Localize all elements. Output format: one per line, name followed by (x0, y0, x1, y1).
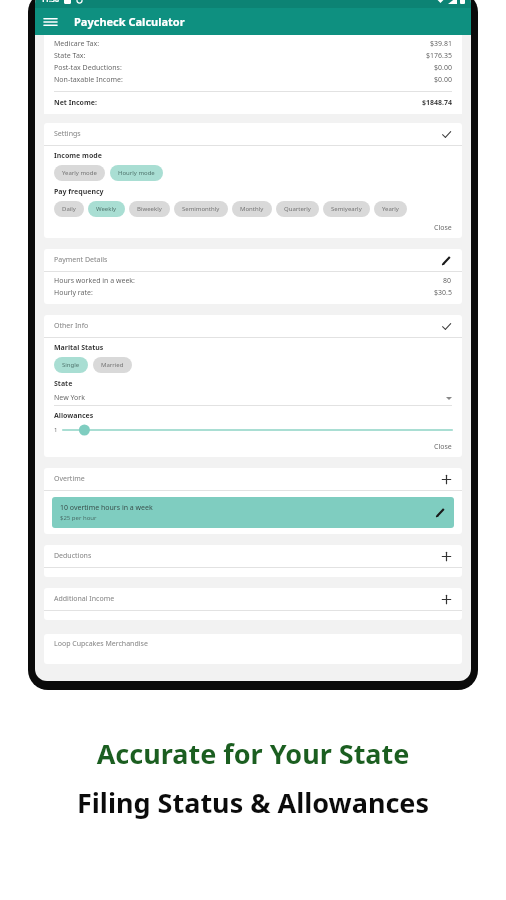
button[interactable]: Yearly mode (54, 165, 105, 181)
staticText: New York (54, 393, 446, 403)
button[interactable]: Overtime (44, 468, 462, 490)
staticText: Married (101, 361, 124, 369)
staticText: Allowances (54, 411, 94, 421)
button[interactable]: Deductions (44, 545, 462, 567)
staticText: 1 (54, 426, 58, 434)
staticText: $39.81 (430, 39, 452, 49)
staticText: Biweekly (137, 205, 162, 213)
staticText: Post-tax Deductions: (54, 63, 434, 73)
button[interactable]: Payment Details (44, 249, 462, 271)
button[interactable]: Additional Income (44, 588, 462, 610)
staticText: Pay frequency (54, 187, 104, 197)
staticText: Non-taxable Income: (54, 75, 434, 85)
staticText: Hours worked in a week: (54, 276, 443, 286)
other: Add (441, 474, 452, 485)
button[interactable]: Semiyearly (323, 201, 370, 217)
staticText: Hourly mode (118, 169, 155, 177)
button[interactable]: Other Info (44, 315, 462, 337)
staticText: Quarterly (284, 205, 311, 213)
button[interactable]: New York (54, 393, 452, 403)
staticText: Close (434, 223, 452, 233)
staticText: $1848.74 (422, 98, 452, 108)
staticText: Paycheck Calculator (74, 14, 185, 29)
button[interactable]: Quarterly (276, 201, 319, 217)
staticText: Deductions (54, 551, 441, 561)
staticText: $0.00 (434, 63, 452, 73)
staticText: Net Income: (54, 98, 422, 108)
staticText: Other Info (54, 321, 441, 331)
staticText: $25 per hour (60, 514, 97, 522)
staticText: Hourly rate: (54, 288, 434, 298)
staticText: Semiyearly (331, 205, 362, 213)
staticText: Close (434, 442, 452, 452)
staticText: 10 overtime hours in a week (60, 503, 153, 513)
staticText: Filing Status & Allowances (0, 784, 506, 821)
other: Edit (435, 507, 446, 518)
staticText: $30.5 (434, 288, 452, 298)
staticText: Semimonthly (182, 205, 220, 213)
other: Confirm (441, 321, 452, 332)
staticText: Accurate for Your State (0, 735, 506, 772)
other: Add (441, 594, 452, 605)
staticText: Yearly mode (62, 169, 97, 177)
staticText: Medicare Tax: (54, 39, 430, 49)
staticText: Yearly (382, 205, 399, 213)
staticText: Loop Cupcakes Merchandise (54, 639, 148, 649)
staticText: Daily (62, 205, 76, 213)
staticText: State Tax: (54, 51, 426, 61)
staticText: Payment Details (54, 255, 441, 265)
button[interactable]: Loop Cupcakes Merchandise (44, 634, 462, 654)
other: Select state (446, 396, 452, 400)
button[interactable]: Hourly mode (110, 165, 163, 181)
staticText: Overtime (54, 474, 441, 484)
staticText: Weekly (96, 205, 117, 213)
staticText: $176.35 (426, 51, 452, 61)
staticText: Single (62, 361, 80, 369)
staticText: Settings (54, 129, 441, 139)
button[interactable]: Yearly (374, 201, 407, 217)
other: Add (441, 551, 452, 562)
staticText: Marital Status (54, 343, 104, 353)
button[interactable]: Monthly (232, 201, 272, 217)
staticText: Monthly (240, 205, 264, 213)
staticText: Income mode (54, 151, 102, 161)
button[interactable]: Semimonthly (174, 201, 228, 217)
button[interactable]: Close (54, 442, 452, 452)
button[interactable]: Close (54, 223, 452, 233)
staticText: State (54, 379, 73, 389)
other: Edit (441, 255, 452, 266)
staticText: 11:58 (41, 0, 59, 5)
button[interactable]: Settings (44, 123, 462, 145)
other: Confirm (441, 129, 452, 140)
button[interactable]: Menu (35, 11, 66, 33)
button[interactable]: Single (54, 357, 88, 373)
button[interactable]: Daily (54, 201, 84, 217)
staticText: Additional Income (54, 594, 441, 604)
staticText: $0.00 (434, 75, 452, 85)
staticText: 80 (443, 276, 452, 286)
button[interactable] (63, 424, 452, 436)
button[interactable]: Married (93, 357, 132, 373)
button[interactable]: 10 overtime hours in a week (52, 497, 454, 528)
button[interactable]: Weekly (88, 201, 125, 217)
button[interactable]: Biweekly (129, 201, 170, 217)
